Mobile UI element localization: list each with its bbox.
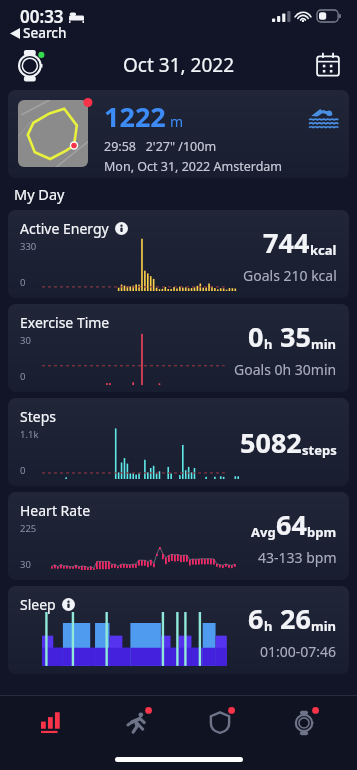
- staticText: 1.1k: [20, 428, 39, 441]
- staticText: h: [264, 617, 273, 635]
- button[interactable]: Device: [273, 697, 335, 747]
- staticText: 330: [20, 240, 37, 253]
- staticText: h: [264, 335, 273, 353]
- staticText: 43-133 bpm: [258, 548, 337, 567]
- staticText: Sleep: [20, 595, 56, 614]
- staticText: Mon, Oct 31, 2022 Amsterdam Open Wat...: [104, 158, 297, 178]
- staticText: steps: [302, 441, 337, 459]
- button[interactable]: Heart Rate: [8, 492, 349, 580]
- staticText: 30: [20, 558, 31, 571]
- button[interactable]: Search: [10, 24, 67, 42]
- button[interactable]: 1222: [8, 90, 349, 178]
- staticText: 5082: [240, 424, 302, 461]
- staticText: Heart Rate: [20, 501, 91, 520]
- button[interactable]: Active Energy: [8, 210, 349, 298]
- button[interactable]: Sleep: [8, 586, 349, 674]
- staticText: 6: [248, 600, 264, 637]
- staticText: 1222: [104, 98, 166, 135]
- staticText: 29:58 2'27" /100m: [104, 138, 217, 155]
- staticText: 744: [263, 224, 310, 261]
- staticText: 0: [20, 464, 26, 477]
- staticText: 35: [273, 318, 311, 355]
- staticText: Steps: [20, 407, 56, 426]
- staticText: My Day: [14, 184, 65, 204]
- staticText: 01:00-07:46: [260, 642, 337, 661]
- staticText: Active Energy: [20, 219, 109, 238]
- staticText: 0: [248, 318, 264, 355]
- staticText: 64: [276, 506, 307, 543]
- button[interactable]: Workout: [106, 697, 168, 747]
- staticText: min: [311, 335, 337, 353]
- staticText: bpm: [307, 523, 337, 541]
- staticText: 0: [20, 370, 26, 383]
- staticText: 00:33: [20, 5, 64, 28]
- staticText: 0: [20, 276, 26, 289]
- staticText: Exercise Time: [20, 313, 110, 332]
- staticText: Oct 31, 2022: [123, 52, 234, 78]
- staticText: Goals 210 kcal: [243, 266, 337, 285]
- staticText: 30: [20, 334, 31, 347]
- button[interactable]: Steps: [8, 398, 349, 486]
- staticText: kcal: [310, 241, 337, 259]
- staticText: Avg: [251, 523, 276, 541]
- button[interactable]: Safety: [189, 697, 251, 747]
- button[interactable]: Exercise Time: [8, 304, 349, 392]
- staticText: Search: [23, 24, 67, 42]
- button[interactable]: Calendar: [315, 52, 341, 78]
- staticText: Goals 0h 30min: [234, 360, 337, 379]
- staticText: 225: [20, 522, 37, 535]
- button[interactable]: Activity: [22, 697, 84, 747]
- button[interactable]: Watch device: [14, 47, 50, 83]
- staticText: m: [170, 112, 184, 131]
- staticText: min: [311, 617, 337, 635]
- staticText: 26: [273, 600, 311, 637]
